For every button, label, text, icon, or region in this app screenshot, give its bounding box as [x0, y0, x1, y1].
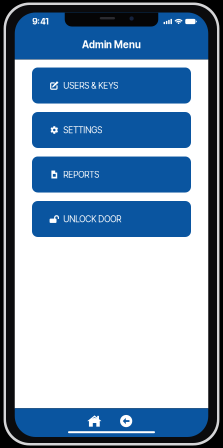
staticText: USERS & KEYS	[63, 80, 118, 91]
staticText: 9:41	[32, 16, 48, 27]
button[interactable]: Back	[120, 415, 132, 427]
staticText: REPORTS	[63, 169, 99, 180]
staticText: Admin Menu	[82, 39, 141, 50]
button[interactable]: USERS & KEYS	[32, 67, 191, 103]
button[interactable]: REPORTS	[32, 156, 191, 192]
button[interactable]: SETTINGS	[32, 112, 191, 148]
button[interactable]: Home	[87, 415, 101, 427]
button[interactable]: UNLOCK DOOR	[32, 201, 191, 237]
staticText: SETTINGS	[63, 125, 102, 135]
staticText: UNLOCK DOOR	[63, 214, 121, 224]
